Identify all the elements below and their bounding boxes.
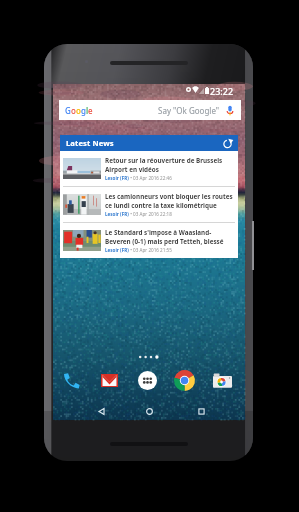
staticText: G — [65, 105, 71, 116]
staticText: • 03 Apr 2016 22:18 — [129, 211, 172, 217]
staticText: g — [81, 105, 86, 116]
staticText: l — [86, 105, 88, 116]
staticText: Latest News — [66, 138, 114, 148]
button[interactable]: Refresh — [221, 137, 234, 150]
button[interactable]: Back — [84, 402, 118, 420]
button[interactable]: G — [59, 100, 241, 120]
staticText: Lesoir (FR) — [105, 175, 129, 181]
button[interactable]: Recents — [184, 402, 218, 420]
button[interactable]: Retour sur la réouverture de Brussels — [60, 151, 238, 186]
staticText: Lesoir (FR) — [105, 247, 129, 253]
staticText: 23:22 — [210, 85, 234, 96]
staticText: • 03 Apr 2016 22:46 — [129, 175, 172, 181]
staticText: ce lundi contre la taxe kilométrique — [105, 201, 217, 210]
button[interactable]: Chrome — [173, 369, 195, 391]
staticText: Beveren (0-1) mais perd Tetteh, blessé — [105, 237, 224, 246]
button[interactable]: Le Standard s'impose à Waasland- — [60, 223, 238, 258]
staticText: e — [88, 105, 93, 116]
button[interactable]: Home — [132, 402, 166, 420]
button[interactable]: Gmail — [98, 369, 120, 391]
staticText: Say "Ok Google" — [158, 105, 220, 116]
button[interactable]: Phone — [60, 369, 82, 391]
button[interactable]: Camera — [211, 369, 233, 391]
staticText: o — [76, 105, 81, 116]
staticText: Le Standard s'impose à Waasland- — [105, 228, 212, 237]
button[interactable]: All apps — [136, 369, 158, 391]
staticText: • 03 Apr 2016 21:55 — [129, 247, 172, 253]
button[interactable]: Les camionneurs vont bloquer les routes — [60, 187, 238, 222]
staticText: Airport en vidéos — [105, 165, 159, 174]
staticText: Les camionneurs vont bloquer les routes — [105, 192, 233, 201]
button[interactable]: Latest News — [60, 135, 238, 151]
staticText: Retour sur la réouverture de Brussels — [105, 156, 223, 165]
staticText: Lesoir (FR) — [105, 211, 129, 217]
staticText: o — [71, 105, 76, 116]
